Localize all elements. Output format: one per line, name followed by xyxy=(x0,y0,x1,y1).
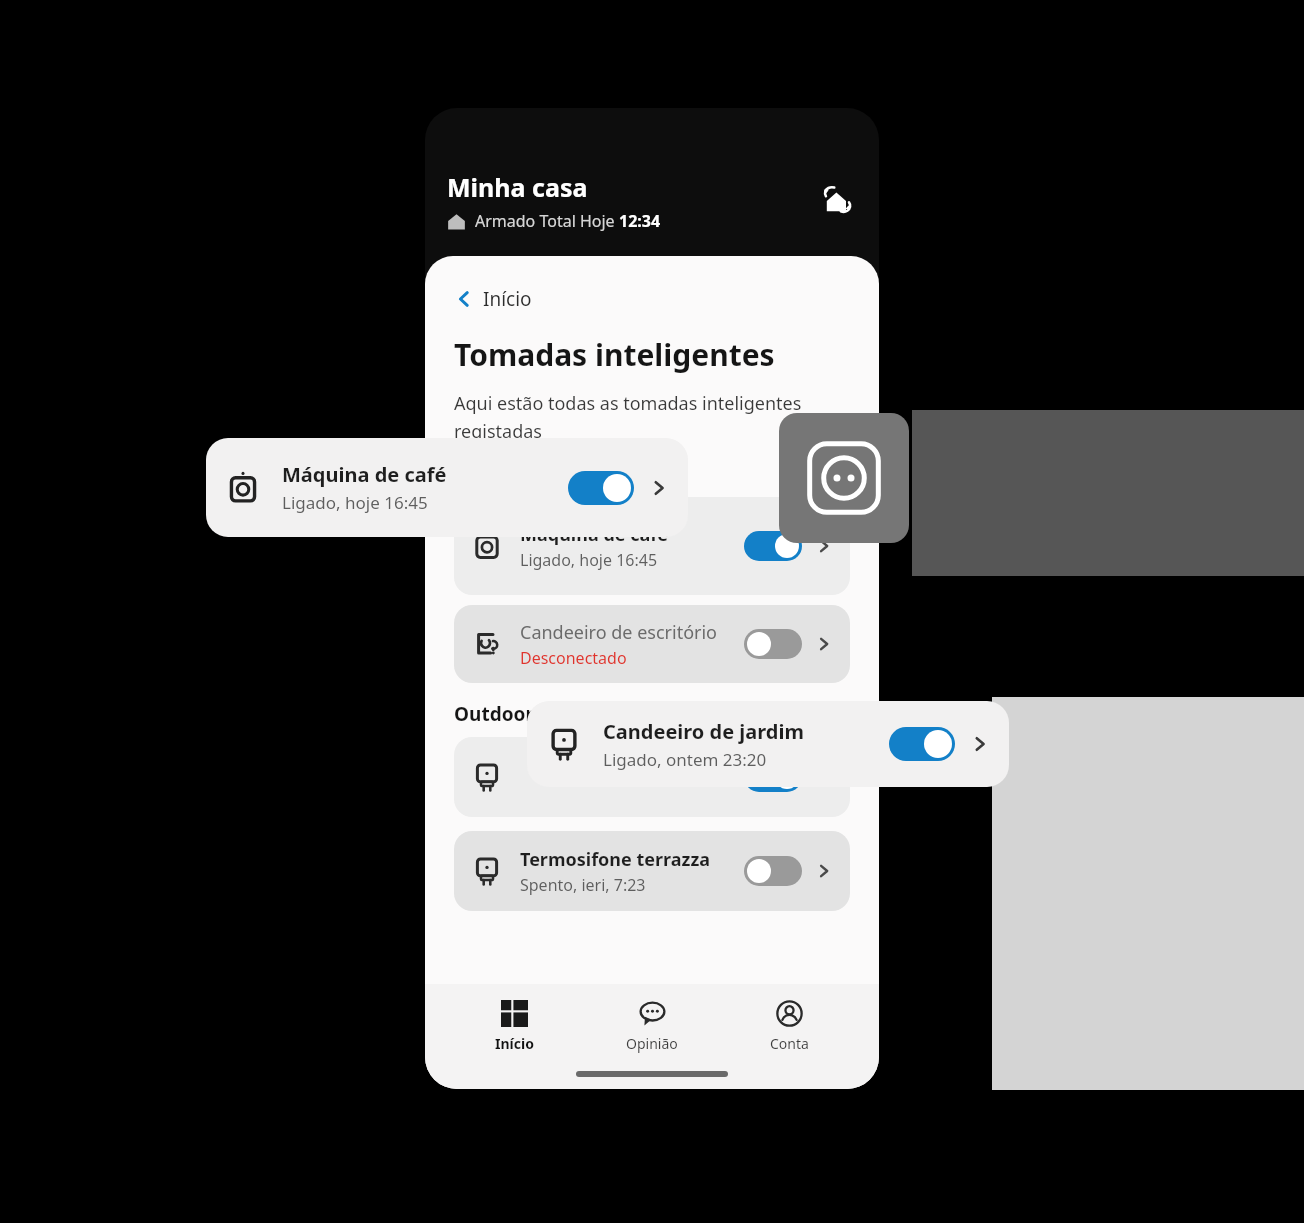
button[interactable]: Ligado xyxy=(568,471,634,505)
staticText: Máquina de café xyxy=(520,522,668,547)
button[interactable]: Alterar estado xyxy=(817,181,857,221)
staticText: Ligado, hoje 16:45 xyxy=(282,491,428,514)
staticText: Minha casa xyxy=(447,170,588,204)
staticText: Desconectado xyxy=(520,647,627,669)
staticText: Aqui estão todas as tomadas inteligentes… xyxy=(454,391,879,471)
button[interactable]: Opinião xyxy=(604,996,700,1057)
button[interactable]: Ligado xyxy=(889,727,955,761)
button[interactable]: Candeeiro de escritório xyxy=(454,605,850,683)
staticText: Spento, ieri, 7:23 xyxy=(520,874,646,896)
button[interactable]: Desligado xyxy=(744,856,802,886)
button[interactable]: Candeeiro de jardim xyxy=(527,701,1009,787)
staticText: 12:34 xyxy=(619,210,661,232)
button[interactable]: Ligado xyxy=(744,762,802,792)
button[interactable]: Ligado xyxy=(454,737,850,817)
staticText: Ligado, hoje 16:45 xyxy=(520,549,658,571)
staticText: Outdoor xyxy=(454,701,534,727)
staticText: Início xyxy=(483,286,532,312)
staticText: Tomadas inteligentes xyxy=(454,334,775,375)
staticText: Armado Total Hoje xyxy=(475,210,619,232)
staticText: Ligado, ontem 23:20 xyxy=(603,748,767,771)
staticText: Candeeiro de jardim xyxy=(603,718,804,745)
button[interactable]: Ligado xyxy=(744,531,802,561)
staticText: Termosifone terrazza xyxy=(520,847,711,872)
button[interactable]: Tomada inteligente xyxy=(779,413,909,543)
button[interactable]: Máquina de café xyxy=(206,438,688,537)
staticText: Conta xyxy=(770,1034,809,1053)
staticText: Opinião xyxy=(626,1034,678,1053)
button[interactable]: Máquina de café xyxy=(454,497,850,595)
button[interactable]: Início xyxy=(473,996,556,1057)
staticText: Máquina de café xyxy=(282,461,447,488)
staticText: Candeeiro de escritório xyxy=(520,620,718,645)
button[interactable]: Termosifone terrazza xyxy=(454,831,850,911)
button[interactable]: Desligado xyxy=(744,629,802,659)
button[interactable]: Conta xyxy=(748,996,831,1057)
button[interactable]: Início xyxy=(451,282,536,316)
staticText: Início xyxy=(495,1034,534,1053)
